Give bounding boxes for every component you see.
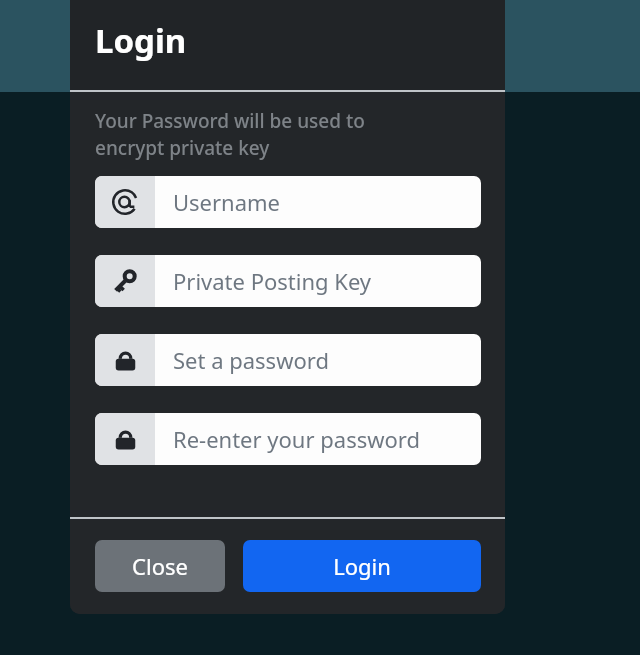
other: Key [95, 255, 155, 307]
staticText: Private Posting Key [173, 266, 372, 296]
staticText: Close [132, 551, 188, 581]
button[interactable]: Lock [95, 334, 481, 386]
button[interactable]: Close [95, 540, 225, 592]
button[interactable]: Key [95, 255, 481, 307]
button[interactable]: Login [243, 540, 481, 592]
staticText: Username [173, 187, 281, 217]
staticText: Set a password [173, 345, 329, 375]
other: Lock [95, 334, 155, 386]
staticText: Re-enter your password [173, 424, 420, 454]
other: Lock [95, 413, 155, 465]
other: At [95, 176, 155, 228]
button[interactable]: Lock [95, 413, 481, 465]
button[interactable]: At [95, 176, 481, 228]
staticText: Your Password will be used to encrypt pr… [95, 108, 365, 161]
staticText: Login [95, 18, 187, 63]
staticText: Login [333, 551, 391, 581]
